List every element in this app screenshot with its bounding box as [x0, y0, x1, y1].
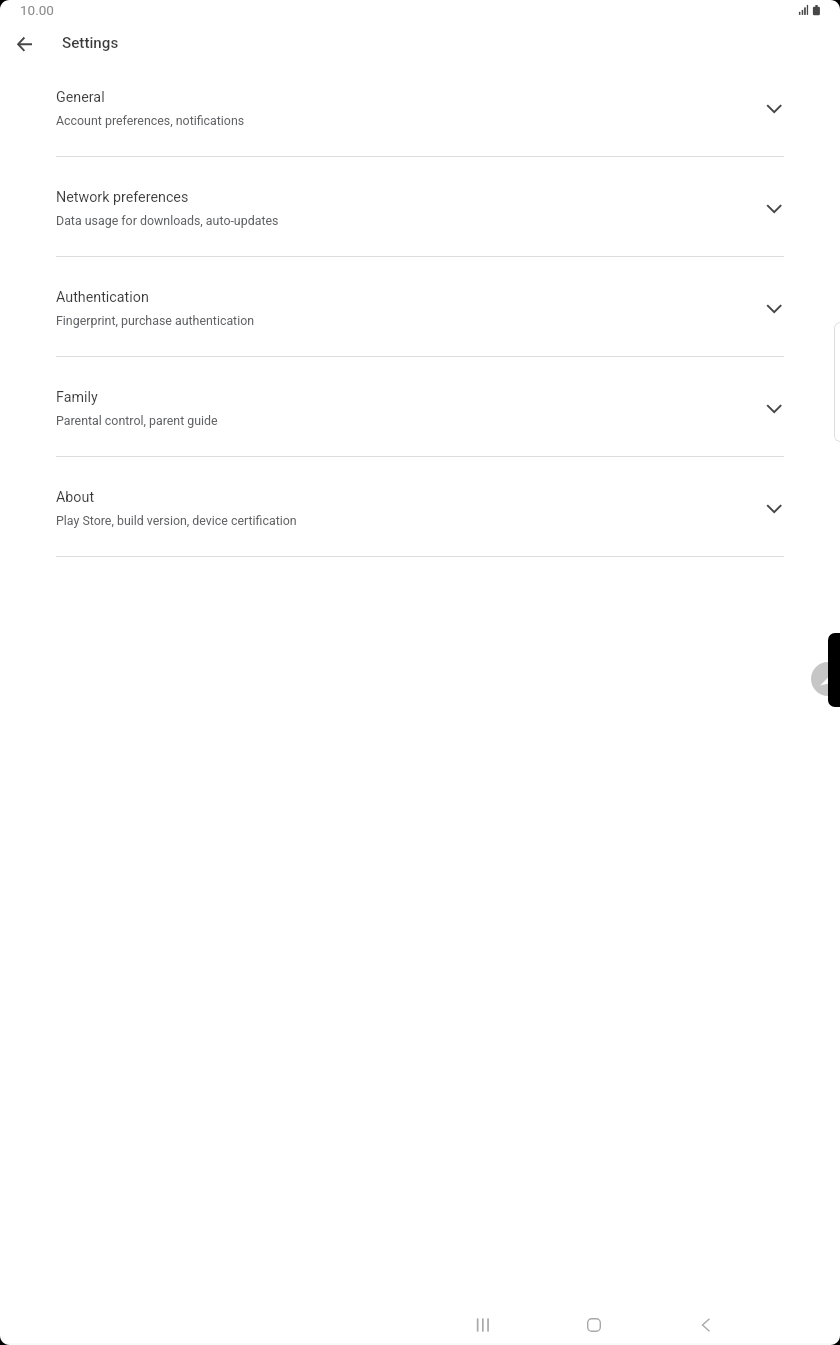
button[interactable]: Expand Family [755, 391, 792, 428]
button[interactable]: Network preferences [0, 157, 840, 257]
staticText: Settings [62, 34, 119, 52]
button[interactable]: Back [7, 28, 43, 59]
button[interactable]: General [0, 57, 840, 157]
button[interactable]: Expand About [755, 491, 792, 528]
staticText: Family [56, 389, 98, 406]
staticText: Network preferences [56, 189, 189, 206]
staticText: General [56, 89, 105, 106]
button[interactable]: Recent apps [455, 1297, 511, 1345]
button[interactable]: Scroll to top [811, 662, 840, 696]
button[interactable]: About [0, 457, 840, 557]
staticText: Parental control, parent guide [56, 413, 218, 428]
staticText: Fingerprint, purchase authentication [56, 313, 255, 328]
staticText: Data usage for downloads, auto-updates [56, 213, 279, 228]
button[interactable]: Back [678, 1297, 734, 1345]
staticText: 10.00 [20, 2, 54, 18]
button[interactable]: Expand General [755, 91, 792, 128]
staticText: Play Store, build version, device certif… [56, 513, 297, 528]
button[interactable]: Expand Authentication [755, 291, 792, 328]
button[interactable]: Home [566, 1297, 622, 1345]
staticText: Authentication [56, 289, 149, 306]
staticText: Account preferences, notifications [56, 113, 245, 128]
button[interactable]: Expand Network preferences [755, 191, 792, 228]
staticText: About [56, 489, 95, 506]
button[interactable]: Edge panel [834, 322, 840, 442]
button[interactable]: Authentication [0, 257, 840, 357]
button[interactable]: Family [0, 357, 840, 457]
